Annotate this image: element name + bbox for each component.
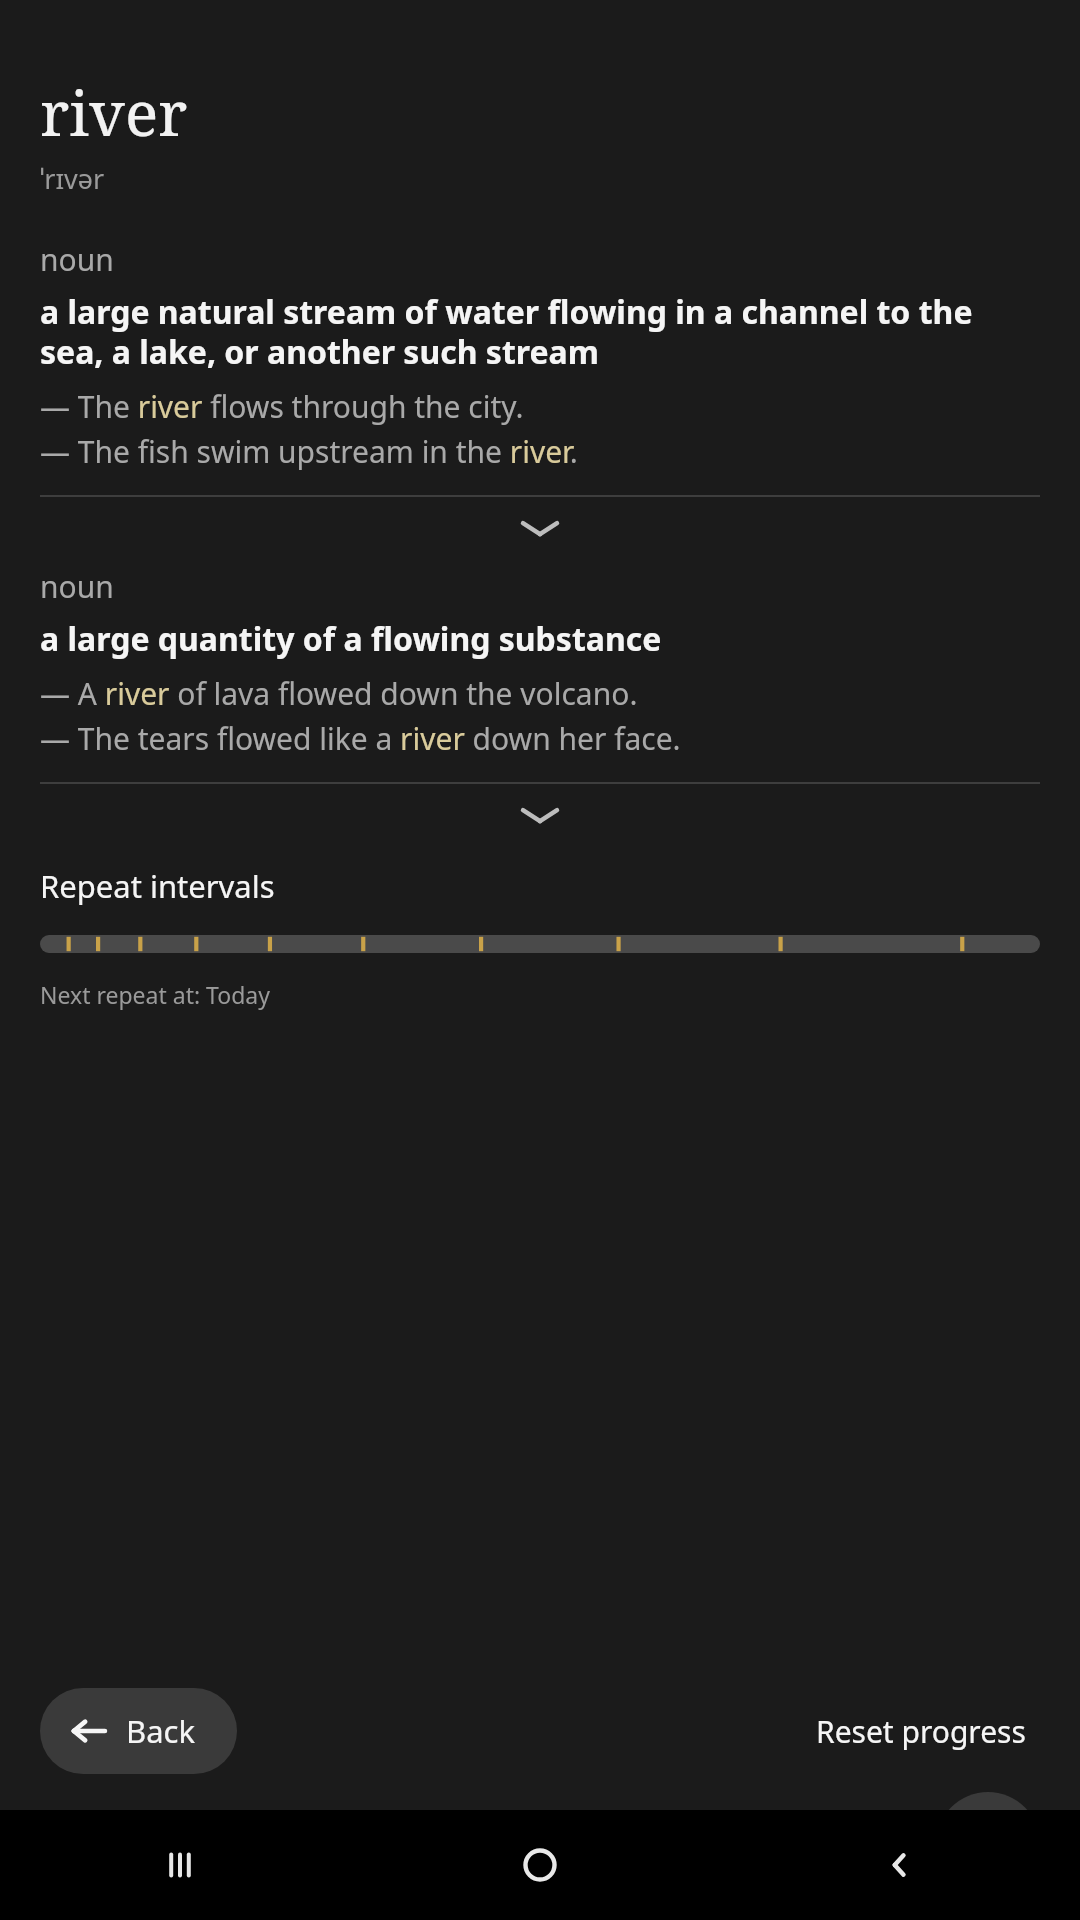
- staticText: ˈrɪvər: [40, 160, 105, 197]
- staticText: noun: [40, 566, 114, 607]
- staticText: — The tears flowed like a river down her…: [40, 718, 681, 759]
- button[interactable]: Home: [360, 1810, 720, 1920]
- staticText: Next repeat at: Today: [40, 979, 270, 1010]
- button[interactable]: Reset progress: [802, 1699, 1040, 1764]
- button[interactable]: Repeat interval progress: [40, 929, 1040, 959]
- button[interactable]: Recent apps: [0, 1810, 360, 1920]
- staticText: Back: [126, 1710, 195, 1752]
- staticText: a large natural stream of water flowing …: [40, 290, 1040, 374]
- staticText: a large quantity of a flowing substance: [40, 617, 662, 661]
- staticText: river: [40, 70, 188, 154]
- button[interactable]: Add to favourites: [936, 1792, 1040, 1896]
- button[interactable]: Expand section: [40, 494, 1040, 550]
- staticText: — The fish swim upstream in the river.: [40, 431, 578, 472]
- staticText: — A river of lava flowed down the volcan…: [40, 673, 638, 714]
- button[interactable]: Back: [40, 1688, 237, 1774]
- button[interactable]: Back: [720, 1810, 1080, 1920]
- staticText: Reset progress: [816, 1711, 1026, 1752]
- staticText: — The river flows through the city.: [40, 386, 524, 427]
- staticText: noun: [40, 239, 114, 280]
- staticText: Repeat intervals: [40, 865, 275, 907]
- button[interactable]: Expand section: [40, 781, 1040, 837]
